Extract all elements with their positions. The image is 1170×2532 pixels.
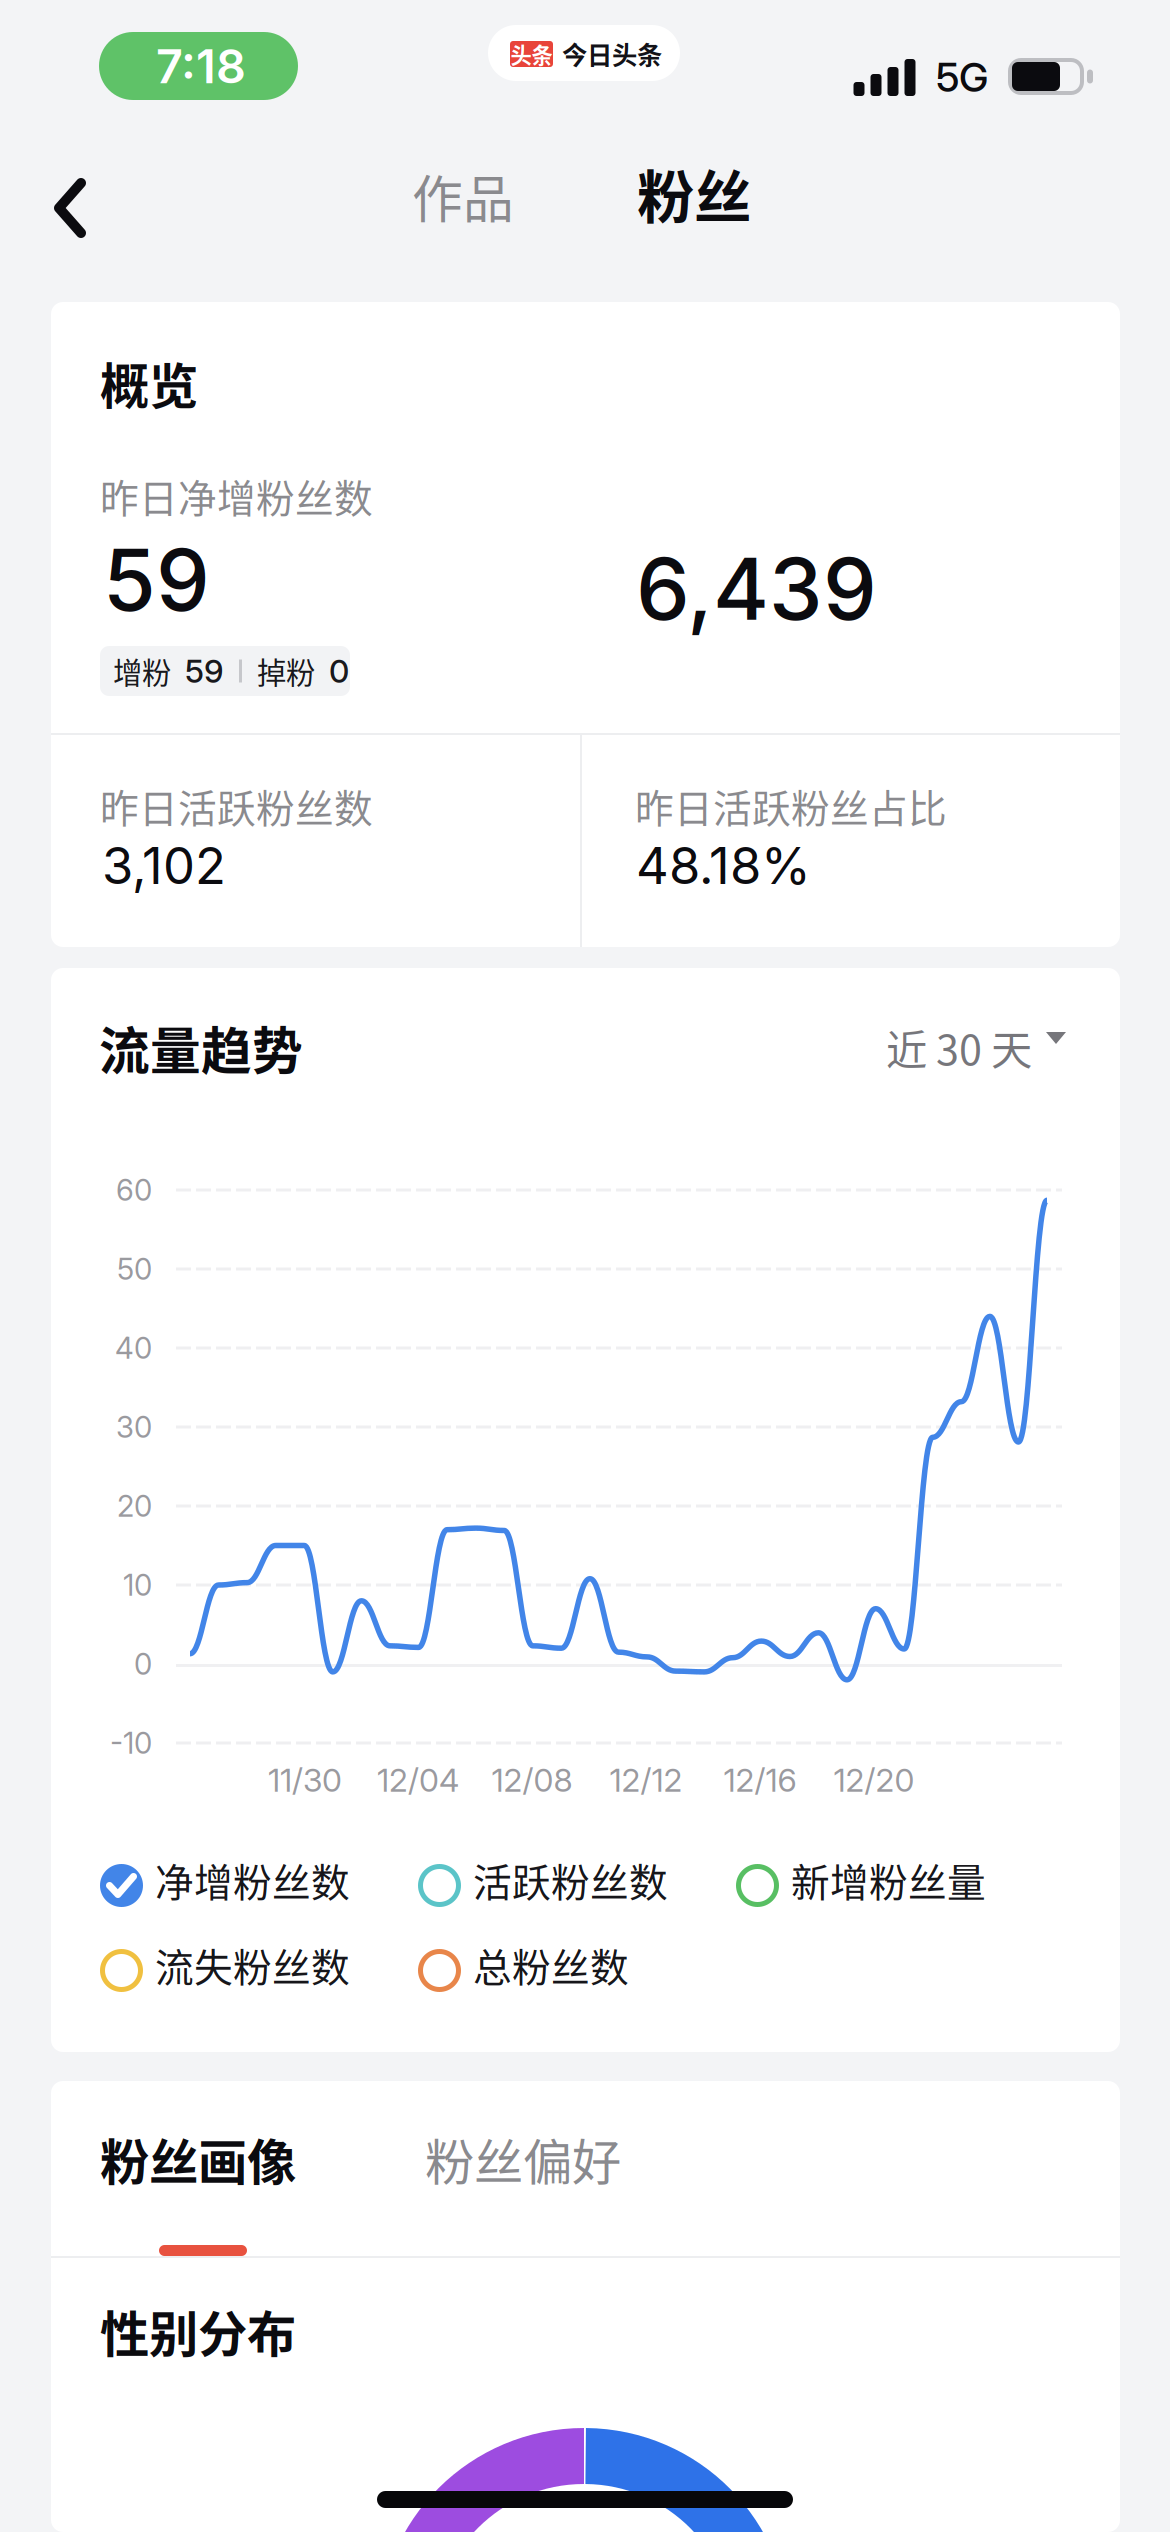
staticText: 11/30	[268, 1761, 342, 1799]
staticText: 净增粉丝数	[155, 1852, 350, 1908]
button[interactable]: 净增粉丝数	[100, 1831, 418, 1919]
button[interactable]: 作品	[393, 152, 533, 240]
button[interactable]: 活跃粉丝数	[418, 1831, 736, 1919]
staticText: 59	[185, 652, 224, 690]
staticText: 12/04	[377, 1761, 459, 1799]
staticText: 12/08	[491, 1761, 572, 1799]
staticText: 48.18%	[636, 835, 811, 896]
staticText: 流失粉丝数	[155, 1937, 350, 1993]
staticText: 3,102	[102, 835, 226, 896]
button[interactable]: 总粉丝数	[418, 1916, 736, 2004]
staticText: 掉粉	[257, 650, 315, 692]
staticText: 概览	[100, 347, 198, 418]
staticText: 粉丝	[637, 151, 751, 234]
staticText: 50	[117, 1251, 152, 1287]
button[interactable]: 粉丝	[619, 147, 769, 239]
staticText: 昨日活跃粉丝数	[100, 778, 373, 834]
staticText: 今日头条	[562, 35, 662, 72]
staticText: 40	[115, 1330, 152, 1366]
staticText: 活跃粉丝数	[473, 1852, 668, 1908]
staticText: 5G	[936, 53, 988, 101]
staticText: 6,439	[636, 537, 877, 640]
staticText: 0	[329, 652, 349, 690]
button[interactable]: 新增粉丝量	[736, 1831, 1054, 1919]
staticText: 性别分布	[100, 2295, 296, 2366]
staticText: 粉丝画像	[100, 2123, 296, 2194]
button[interactable]: 粉丝偏好	[423, 2119, 631, 2189]
staticText: 总粉丝数	[473, 1937, 629, 1993]
staticText: 近 30 天	[886, 1017, 1032, 1077]
button[interactable]: 返回	[22, 150, 118, 266]
staticText: 0	[134, 1646, 152, 1682]
staticText: 增粉	[113, 650, 171, 692]
staticText: 12/12	[609, 1761, 682, 1799]
staticText: 10	[123, 1567, 152, 1603]
button[interactable]: 近 30 天	[880, 1007, 1075, 1069]
staticText: 粉丝偏好	[425, 2123, 621, 2194]
staticText: 流量趋势	[99, 1011, 303, 1084]
staticText: 12/16	[723, 1761, 796, 1799]
staticText: 昨日净增粉丝数	[100, 468, 373, 524]
staticText: 昨日活跃粉丝占比	[635, 778, 947, 834]
button[interactable]: 粉丝画像	[98, 2119, 306, 2259]
staticText: -10	[110, 1725, 152, 1761]
staticText: 59	[103, 528, 210, 631]
staticText: 作品	[412, 159, 514, 233]
staticText: 12/20	[833, 1761, 914, 1799]
staticText: 头条	[510, 39, 552, 69]
staticText: 60	[116, 1172, 152, 1208]
staticText: 30	[116, 1409, 152, 1445]
staticText: 7:18	[156, 38, 246, 94]
staticText: 20	[117, 1488, 152, 1524]
staticText: 新增粉丝量	[791, 1852, 986, 1908]
button[interactable]: 流失粉丝数	[100, 1916, 418, 2004]
